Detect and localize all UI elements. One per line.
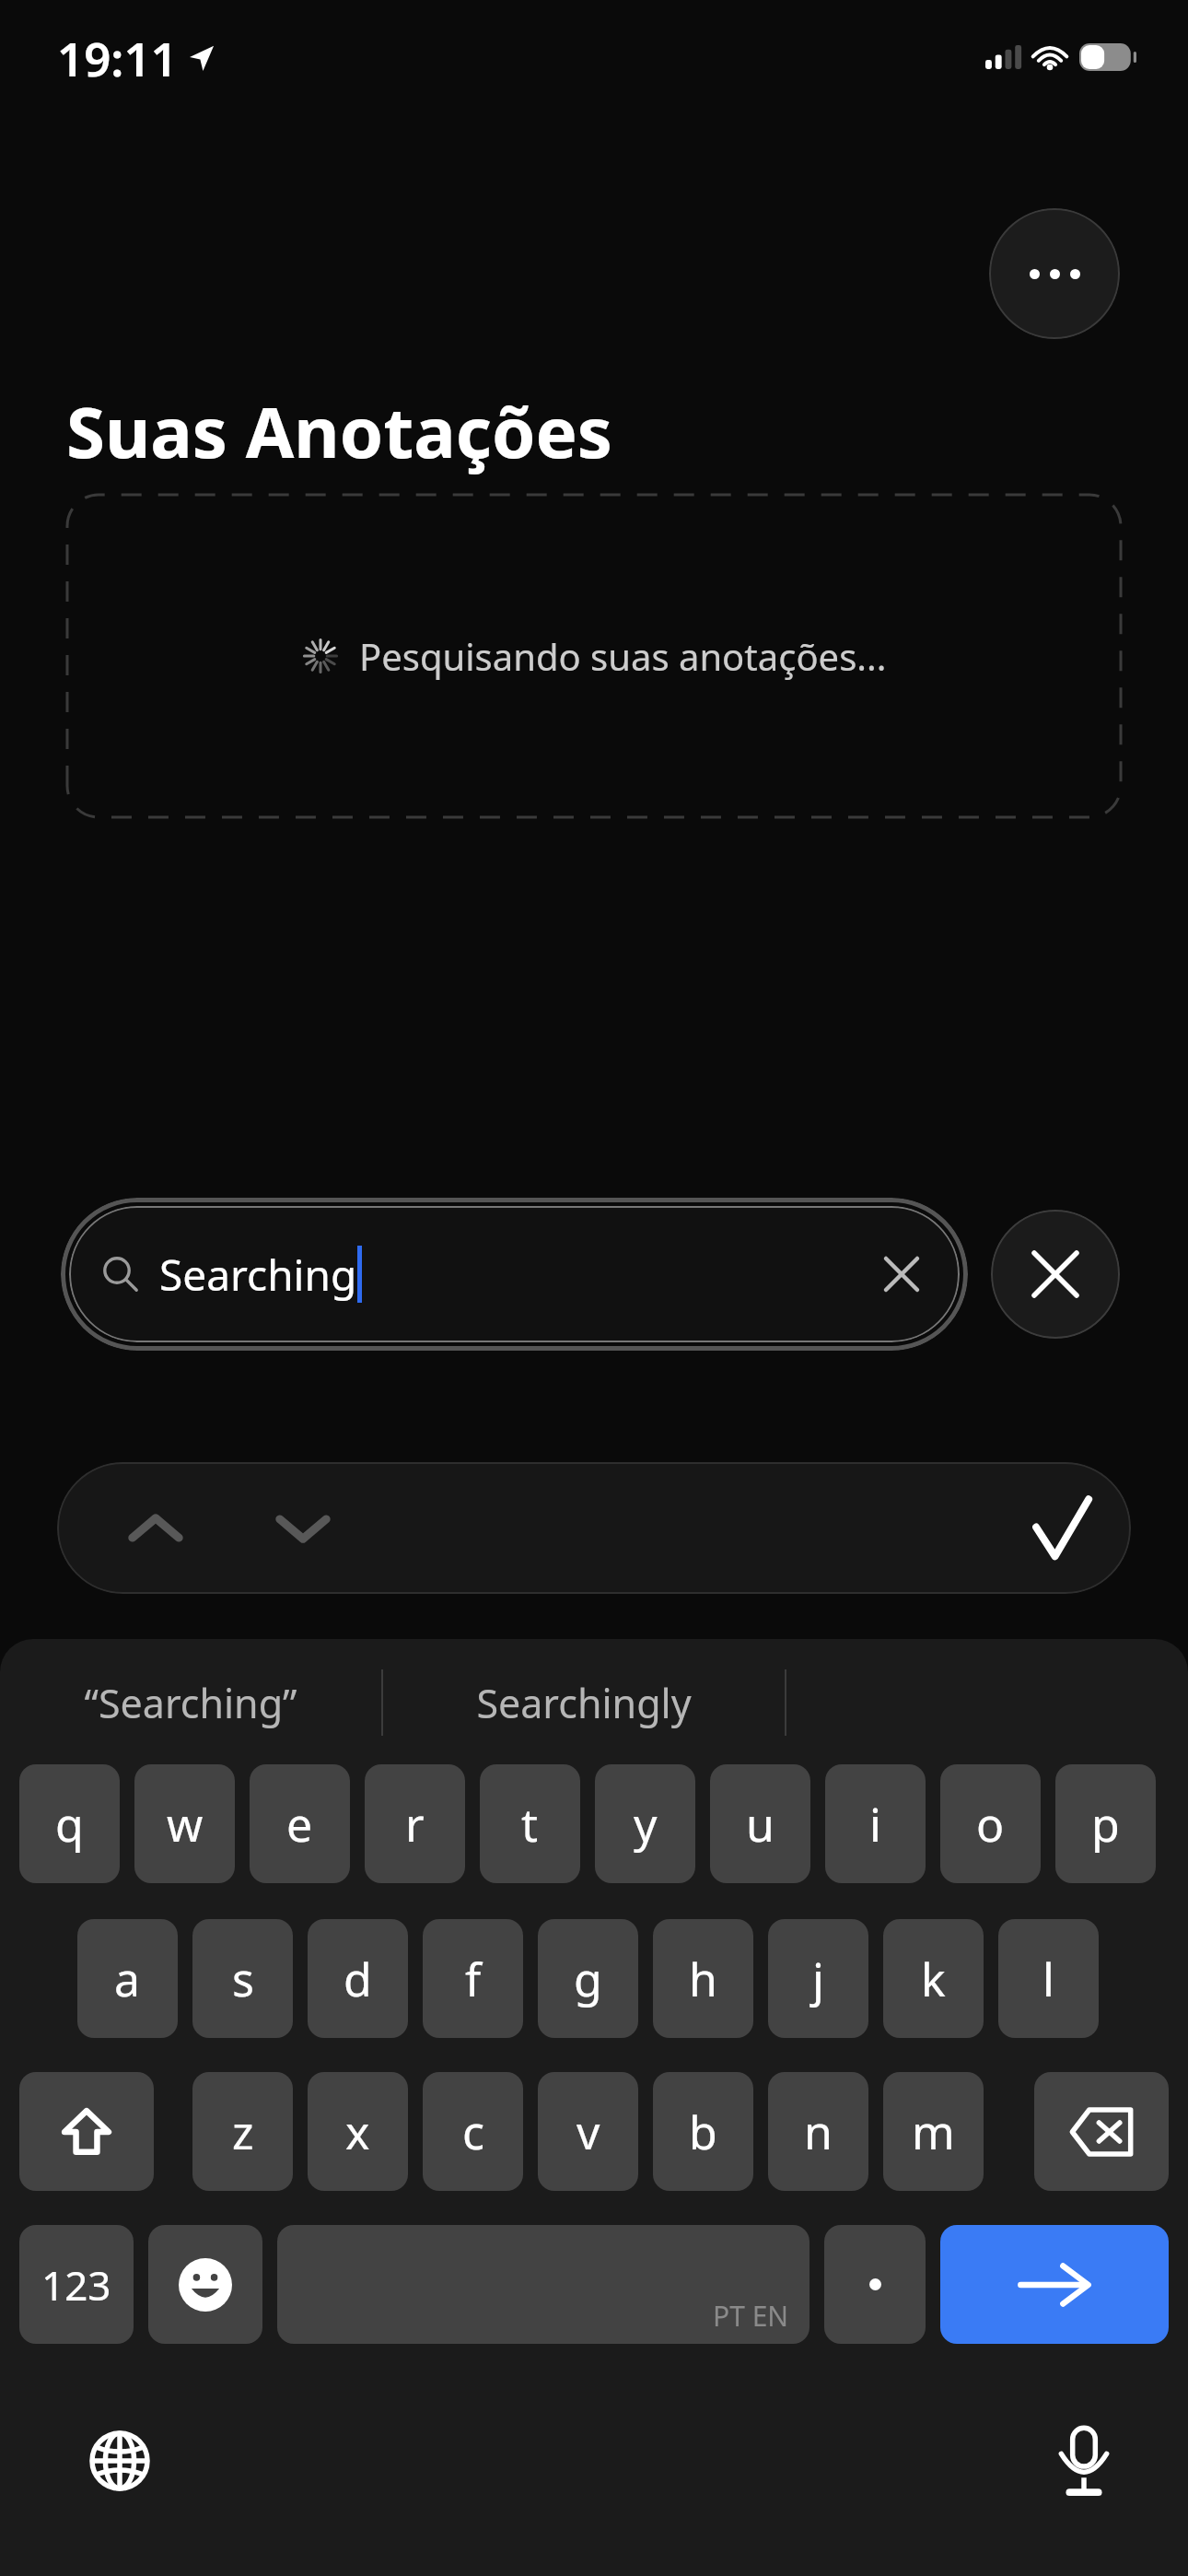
button[interactable]: u — [710, 1764, 810, 1883]
button[interactable]: Backspace — [1034, 2072, 1169, 2191]
staticText: x — [345, 2101, 370, 2163]
staticText: p — [1091, 1793, 1120, 1856]
button[interactable]: t — [480, 1764, 580, 1883]
button[interactable]: s — [192, 1919, 293, 2038]
staticText: r — [405, 1793, 425, 1856]
button[interactable]: p — [1055, 1764, 1156, 1883]
button[interactable]: y — [595, 1764, 695, 1883]
button[interactable]: q — [19, 1764, 120, 1883]
staticText: m — [912, 2101, 955, 2163]
button[interactable]: z — [192, 2072, 293, 2191]
button[interactable]: v — [538, 2072, 638, 2191]
button[interactable]: Searchingly — [383, 1639, 785, 1766]
staticText: Suas Anotações — [66, 383, 612, 479]
button[interactable]: e — [250, 1764, 350, 1883]
staticText: Searching — [159, 1246, 357, 1304]
button[interactable]: g — [538, 1919, 638, 2038]
staticText: y — [634, 1793, 658, 1856]
button[interactable]: Numbers — [19, 2225, 134, 2344]
button[interactable]: k — [883, 1919, 984, 2038]
button[interactable]: Voice input — [1029, 2406, 1139, 2516]
staticText: j — [812, 1948, 824, 2010]
staticText: Searchingly — [476, 1676, 692, 1730]
button[interactable]: n — [768, 2072, 868, 2191]
staticText: g — [574, 1948, 602, 2010]
staticText: z — [232, 2101, 254, 2163]
button[interactable]: PT EN — [277, 2225, 809, 2344]
staticText: PT EN — [713, 2297, 789, 2335]
button[interactable]: h — [653, 1919, 753, 2038]
button[interactable]: Searching — [69, 1206, 960, 1342]
button[interactable]: l — [998, 1919, 1099, 2038]
button[interactable]: o — [940, 1764, 1041, 1883]
button[interactable]: j — [768, 1919, 868, 2038]
button[interactable]: b — [653, 2072, 753, 2191]
button[interactable]: Emoji — [148, 2225, 262, 2344]
staticText: o — [976, 1793, 1005, 1856]
staticText: Pesquisando suas anotações... — [359, 631, 887, 681]
button[interactable]: Period — [824, 2225, 926, 2344]
button[interactable] — [786, 1639, 1188, 1766]
staticText: s — [232, 1948, 254, 2010]
staticText: w — [167, 1793, 204, 1856]
staticText: a — [114, 1948, 141, 2010]
button[interactable]: Close search — [991, 1210, 1120, 1339]
staticText: b — [689, 2101, 717, 2163]
staticText: i — [869, 1793, 881, 1856]
button[interactable]: m — [883, 2072, 984, 2191]
staticText: v — [577, 2101, 600, 2163]
button[interactable]: Shift — [19, 2072, 154, 2191]
staticText: f — [465, 1948, 482, 2010]
button[interactable]: Done — [993, 1462, 1131, 1594]
button[interactable]: c — [423, 2072, 523, 2191]
button[interactable]: x — [308, 2072, 408, 2191]
button[interactable]: Previous match — [96, 1462, 215, 1594]
button[interactable]: Clear text — [871, 1244, 932, 1305]
staticText: 19:11 — [57, 26, 178, 89]
button[interactable]: More options — [989, 208, 1120, 339]
staticText: c — [462, 2101, 484, 2163]
button[interactable]: Return — [940, 2225, 1169, 2344]
staticText: h — [689, 1948, 717, 2010]
button[interactable]: w — [134, 1764, 235, 1883]
staticText: l — [1042, 1948, 1054, 2010]
button[interactable]: i — [825, 1764, 926, 1883]
button[interactable]: f — [423, 1919, 523, 2038]
staticText: u — [746, 1793, 775, 1856]
button[interactable]: a — [77, 1919, 178, 2038]
staticText: d — [344, 1948, 372, 2010]
staticText: “Searching” — [84, 1676, 297, 1730]
staticText: q — [55, 1793, 84, 1856]
button[interactable]: r — [365, 1764, 465, 1883]
button[interactable]: Next match — [243, 1462, 363, 1594]
staticText: 123 — [41, 2257, 111, 2313]
button[interactable]: d — [308, 1919, 408, 2038]
button[interactable]: “Searching” — [0, 1639, 381, 1766]
staticText: k — [921, 1948, 946, 2010]
staticText: t — [521, 1793, 539, 1856]
staticText: n — [804, 2101, 833, 2163]
button[interactable]: Change keyboard — [64, 2406, 175, 2516]
staticText: e — [286, 1793, 313, 1856]
